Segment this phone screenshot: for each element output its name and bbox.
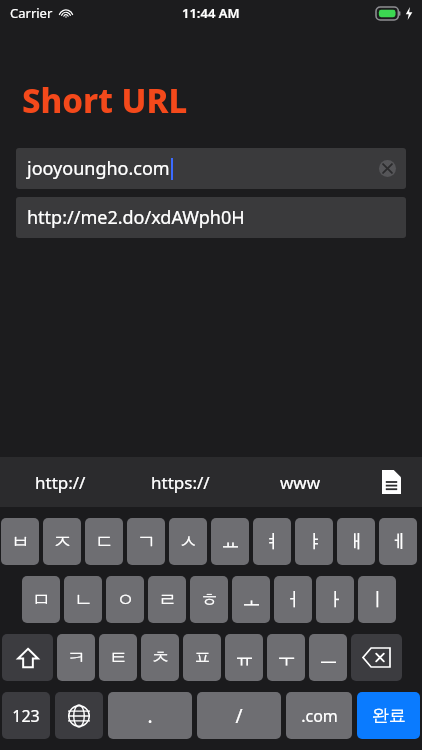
- staticText: ㅋ: [67, 646, 86, 670]
- staticText: ㅎ: [200, 588, 219, 612]
- staticText: ㅍ: [193, 646, 212, 670]
- staticText: ㅌ: [109, 646, 128, 670]
- staticText: ㅇ: [116, 588, 135, 612]
- staticText: 완료: [372, 705, 406, 726]
- staticText: jooyoungho.com: [27, 156, 170, 181]
- staticText: ㅈ: [53, 530, 72, 554]
- staticText: ㅏ: [326, 588, 345, 612]
- staticText: ㅠ: [235, 646, 254, 670]
- staticText: ㅗ: [242, 588, 261, 612]
- button[interactable]: ㅇ: [106, 576, 144, 623]
- staticText: ㅔ: [389, 530, 408, 554]
- button[interactable]: 123: [2, 692, 50, 739]
- staticText: http://: [35, 471, 86, 494]
- button[interactable]: ㅗ: [232, 576, 270, 623]
- staticText: ㅛ: [221, 530, 240, 554]
- button[interactable]: /: [197, 692, 281, 739]
- button[interactable]: ㅎ: [190, 576, 228, 623]
- button[interactable]: ㄴ: [64, 576, 102, 623]
- staticText: www: [280, 471, 321, 494]
- staticText: ㅐ: [347, 530, 366, 554]
- button[interactable]: www: [240, 457, 360, 507]
- button[interactable]: Backspace: [351, 634, 402, 681]
- button[interactable]: Shift: [2, 634, 53, 681]
- staticText: ㅁ: [32, 588, 51, 612]
- staticText: ㄹ: [158, 588, 177, 612]
- staticText: ㅡ: [319, 646, 338, 670]
- staticText: ㅂ: [11, 530, 30, 554]
- button[interactable]: jooyoungho.com: [16, 148, 406, 189]
- staticText: /: [235, 703, 243, 729]
- button[interactable]: ㅅ: [169, 518, 207, 565]
- staticText: .com: [301, 705, 338, 727]
- button[interactable]: Clear text: [379, 160, 396, 177]
- button[interactable]: ㅠ: [225, 634, 263, 681]
- button[interactable]: ㅊ: [141, 634, 179, 681]
- button[interactable]: Paste document: [360, 457, 422, 507]
- staticText: ㅣ: [368, 588, 387, 612]
- button[interactable]: ㅏ: [316, 576, 354, 623]
- staticText: 11:44 AM: [182, 4, 240, 22]
- staticText: ㄴ: [74, 588, 93, 612]
- staticText: Short URL: [22, 78, 188, 123]
- button[interactable]: ㅂ: [1, 518, 39, 565]
- button[interactable]: ㄱ: [127, 518, 165, 565]
- button[interactable]: ㄷ: [85, 518, 123, 565]
- staticText: ㅓ: [284, 588, 303, 612]
- button[interactable]: ㅔ: [379, 518, 417, 565]
- button[interactable]: .com: [286, 692, 352, 739]
- button[interactable]: ㅐ: [337, 518, 375, 565]
- button[interactable]: .: [108, 692, 192, 739]
- button[interactable]: ㅈ: [43, 518, 81, 565]
- button[interactable]: ㅜ: [267, 634, 305, 681]
- staticText: ㅊ: [151, 646, 170, 670]
- button[interactable]: Change keyboard language: [55, 692, 103, 739]
- button[interactable]: ㅑ: [295, 518, 333, 565]
- button[interactable]: ㅕ: [253, 518, 291, 565]
- staticText: Carrier: [10, 4, 53, 22]
- button[interactable]: ㄹ: [148, 576, 186, 623]
- button[interactable]: ㅌ: [99, 634, 137, 681]
- button[interactable]: ㅣ: [358, 576, 396, 623]
- button[interactable]: ㅁ: [22, 576, 60, 623]
- staticText: 123: [12, 705, 40, 727]
- button[interactable]: 완료: [357, 692, 420, 739]
- button[interactable]: http://me2.do/xdAWph0H: [16, 197, 406, 238]
- button[interactable]: ㅋ: [57, 634, 95, 681]
- button[interactable]: ㅛ: [211, 518, 249, 565]
- button[interactable]: ㅍ: [183, 634, 221, 681]
- staticText: ㅅ: [179, 530, 198, 554]
- staticText: ㅜ: [277, 646, 296, 670]
- button[interactable]: http://: [0, 457, 120, 507]
- staticText: ㅑ: [305, 530, 324, 554]
- button[interactable]: ㅡ: [309, 634, 347, 681]
- staticText: .: [147, 703, 153, 729]
- button[interactable]: https://: [120, 457, 240, 507]
- staticText: ㄱ: [137, 530, 156, 554]
- staticText: https://: [151, 471, 210, 494]
- staticText: ㄷ: [95, 530, 114, 554]
- button[interactable]: ㅓ: [274, 576, 312, 623]
- staticText: http://me2.do/xdAWph0H: [27, 205, 245, 230]
- staticText: ㅕ: [263, 530, 282, 554]
